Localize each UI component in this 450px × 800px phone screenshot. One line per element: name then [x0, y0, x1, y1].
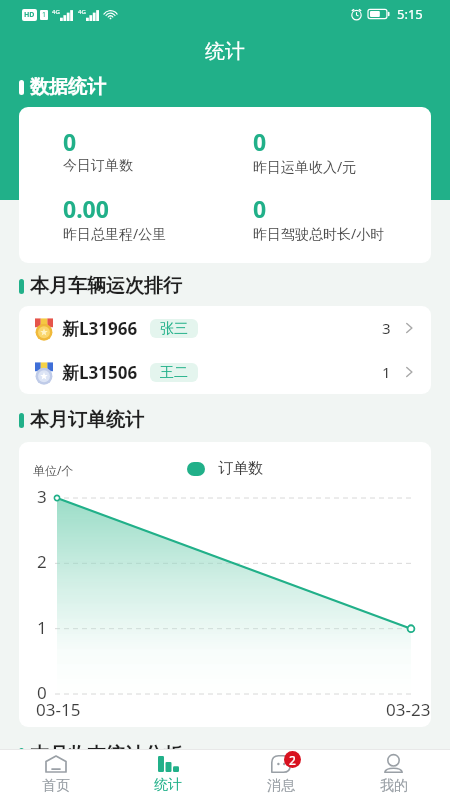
button[interactable]: 我的 — [337, 750, 450, 800]
staticText: 5:15 — [397, 5, 423, 23]
staticText: 王二 — [160, 364, 188, 382]
staticText: 单位/个 — [33, 462, 74, 478]
staticText: 0 — [253, 193, 267, 224]
staticText: 1 — [42, 10, 47, 20]
staticText: 0 — [253, 126, 267, 157]
staticText: 3 — [37, 485, 47, 508]
staticText: 消息 — [267, 777, 295, 795]
staticText: 今日订单数 — [63, 157, 133, 175]
staticText: 统计 — [205, 39, 245, 64]
staticText: 1 — [382, 362, 391, 382]
staticText: 张三 — [160, 320, 188, 338]
staticText: 03-23 — [386, 698, 431, 721]
staticText: 昨日驾驶总时长/小时 — [253, 224, 385, 243]
staticText: 2 — [37, 550, 47, 573]
button[interactable]: 2 — [224, 750, 337, 800]
staticText: 昨日总里程/公里 — [63, 224, 167, 243]
staticText: 0 — [63, 126, 77, 157]
staticText: 统计 — [154, 776, 182, 794]
staticText: 03-15 — [36, 698, 81, 721]
staticText: 数据统计 — [30, 75, 106, 99]
staticText: 0 — [37, 681, 47, 704]
staticText: 2 — [289, 752, 296, 768]
staticText: 首页 — [42, 777, 70, 795]
staticText: 4G — [52, 8, 60, 16]
staticText: 本月车辆运次排行 — [30, 274, 182, 298]
staticText: 本月收支统计分析 — [30, 743, 182, 767]
staticText: 新L31966 — [62, 317, 138, 340]
staticText: HD — [24, 10, 35, 20]
staticText: 我的 — [380, 777, 408, 795]
staticText: 订单数 — [218, 459, 263, 478]
staticText: 新L31506 — [62, 361, 138, 384]
staticText: 本月订单统计 — [30, 408, 144, 432]
staticText: 0.00 — [63, 193, 109, 224]
button[interactable]: 新L31506 — [19, 350, 431, 394]
button[interactable]: 统计 — [112, 750, 224, 800]
staticText: 3 — [382, 318, 391, 338]
button[interactable]: 首页 — [0, 750, 112, 800]
button[interactable]: 新L31966 — [19, 306, 431, 350]
staticText: 昨日运单收入/元 — [253, 157, 357, 176]
staticText: 1 — [37, 616, 47, 639]
staticText: 4G — [78, 8, 86, 16]
